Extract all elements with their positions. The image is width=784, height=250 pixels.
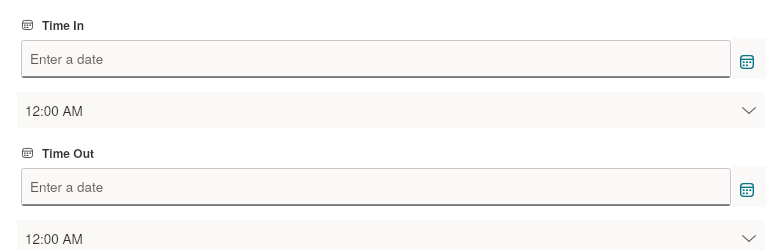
staticText: 12:00 AM xyxy=(25,229,83,248)
staticText: Enter a date xyxy=(30,49,104,68)
button[interactable]: Enter a date xyxy=(21,40,731,78)
button[interactable]: Open calendar xyxy=(732,38,766,79)
other: Expand time list xyxy=(742,235,756,242)
staticText: Time Out xyxy=(42,144,95,160)
button[interactable]: 12:00 AM xyxy=(17,220,765,250)
staticText: 12:00 AM xyxy=(25,101,83,120)
button[interactable]: Enter a date xyxy=(21,168,731,206)
button[interactable]: 12:00 AM xyxy=(17,92,765,128)
button[interactable]: Time In xyxy=(22,16,85,32)
other: Expand time list xyxy=(742,107,756,114)
staticText: Time In xyxy=(42,16,85,32)
button[interactable]: Open calendar xyxy=(732,166,766,207)
staticText: Enter a date xyxy=(30,177,104,196)
button[interactable]: Time Out xyxy=(22,144,95,160)
